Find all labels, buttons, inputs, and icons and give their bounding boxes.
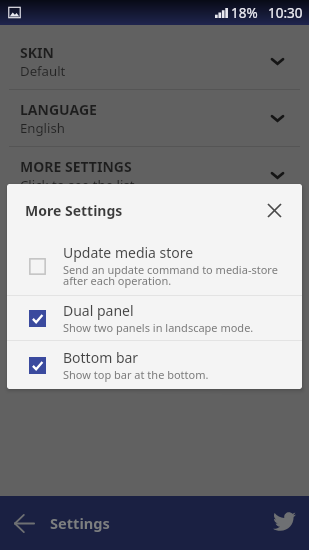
button[interactable]: LANGUAGE — [0, 90, 309, 146]
staticText: Show two panels in landscape mode. — [63, 320, 254, 335]
staticText: English — [20, 119, 65, 137]
staticText: MORE SETTINGS — [20, 157, 132, 176]
staticText: Show top bar at the bottom. — [63, 367, 209, 382]
staticText: Send an update command to media-store af… — [63, 262, 278, 288]
staticText: LANGUAGE — [20, 100, 97, 119]
button[interactable]: Back — [2, 501, 46, 545]
staticText: Settings — [50, 513, 110, 533]
button[interactable]: SKIN — [0, 33, 309, 89]
staticText: 10:30 — [268, 4, 303, 22]
staticText: Update media store — [63, 243, 194, 262]
button[interactable]: Dual panel — [7, 296, 302, 340]
staticText: More Settings — [25, 201, 123, 220]
staticText: Click to see the list — [20, 176, 135, 194]
staticText: Dual panel — [63, 301, 134, 320]
staticText: SKIN — [20, 43, 54, 62]
button[interactable]: Close — [257, 193, 291, 227]
button[interactable]: Bottom bar — [7, 341, 302, 389]
staticText: 18% — [231, 4, 258, 22]
button[interactable]: MORE SETTINGS — [0, 147, 309, 203]
button[interactable]: Update media store — [7, 236, 302, 295]
button[interactable]: Twitter — [264, 501, 308, 545]
staticText: Bottom bar — [63, 348, 139, 367]
staticText: Default — [20, 62, 66, 80]
